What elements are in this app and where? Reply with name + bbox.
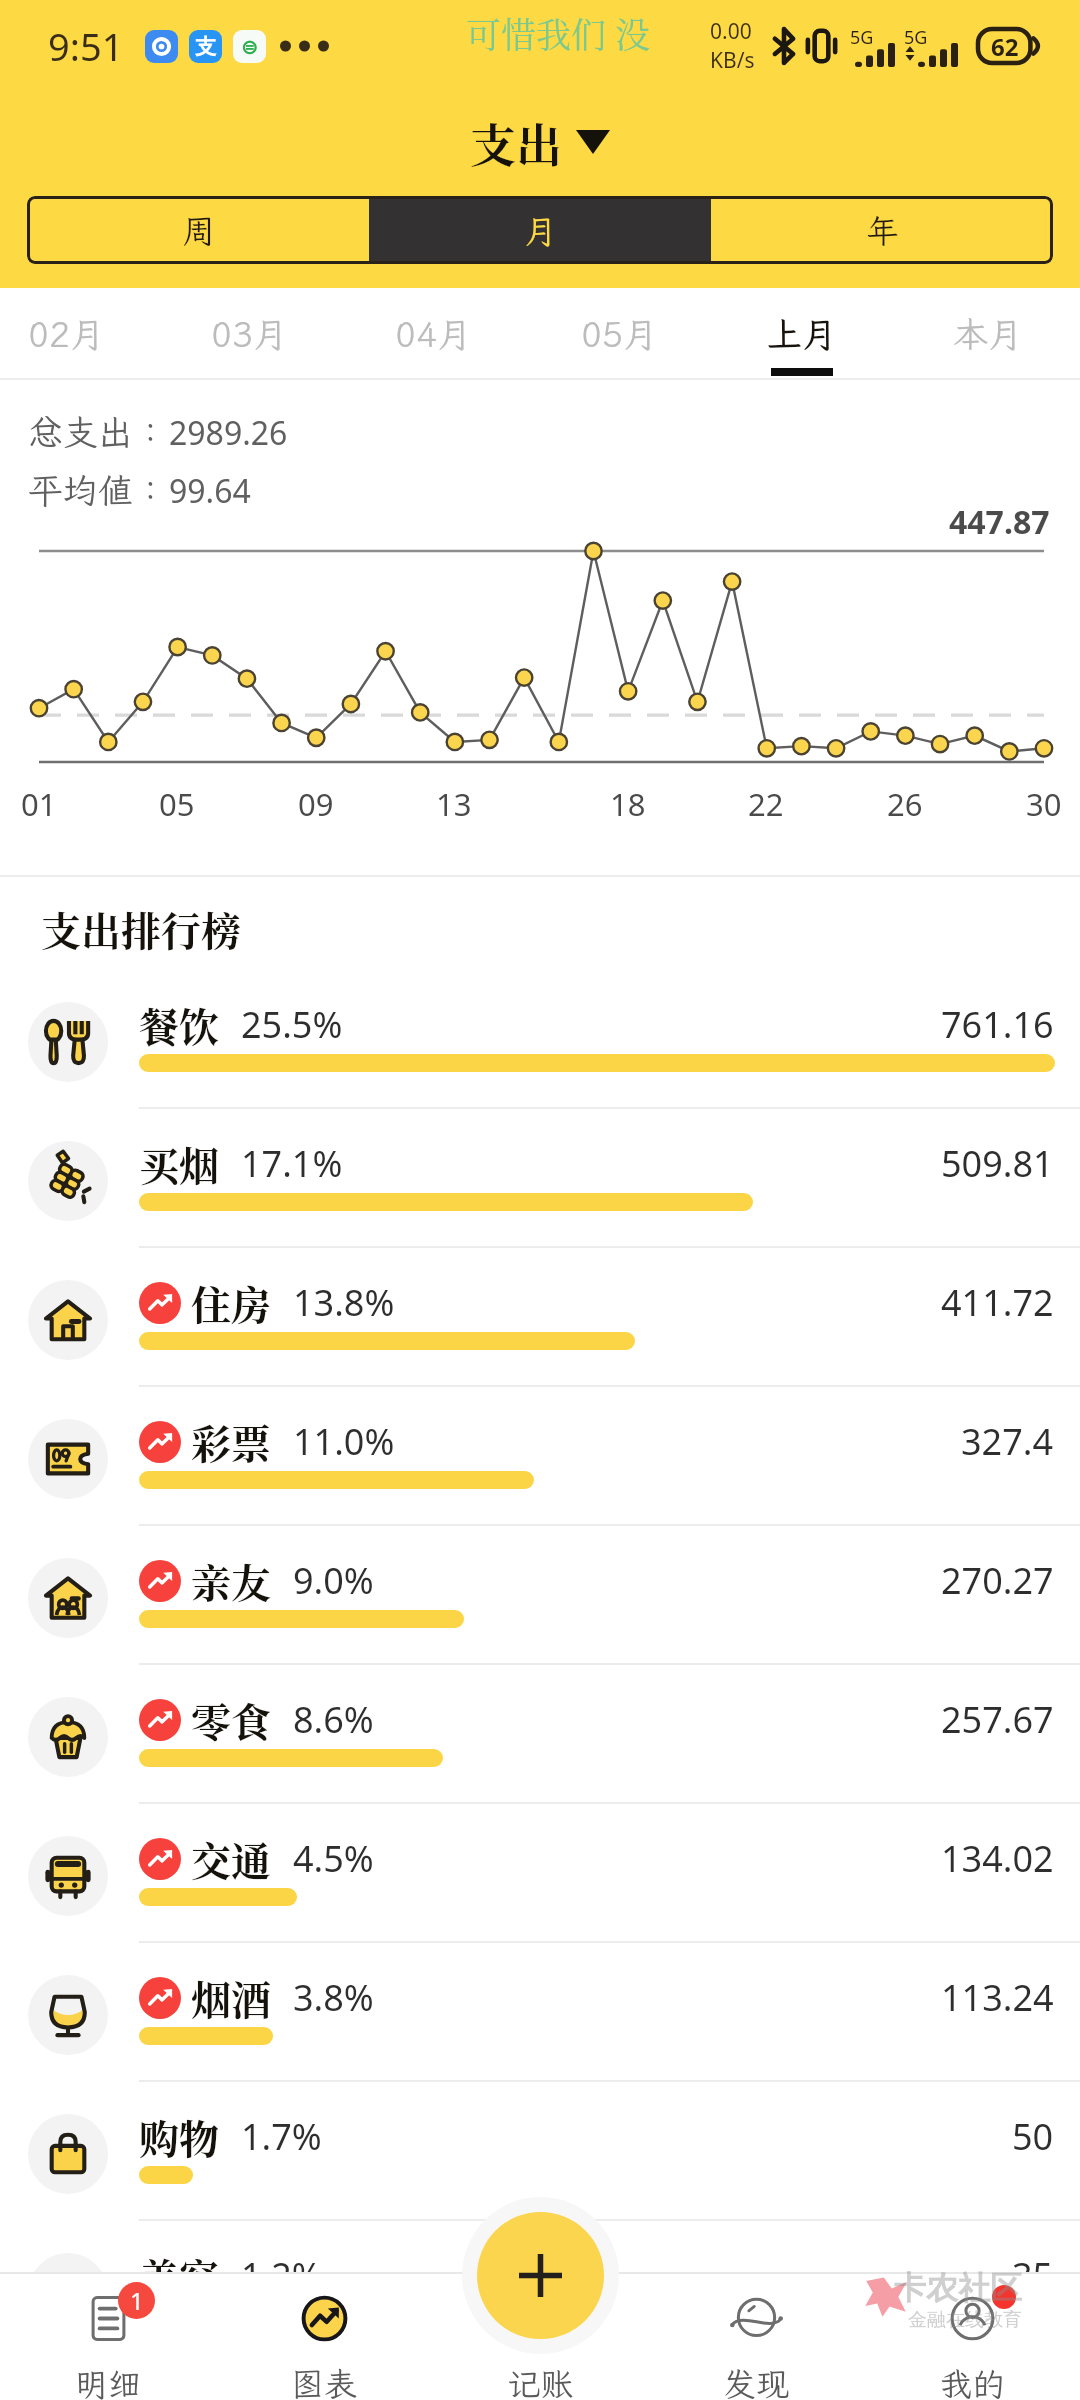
staticText: 2989.26 [169,411,288,455]
staticText: 0.00 [710,17,752,46]
button[interactable]: 本月 [903,288,1073,380]
staticText: 餐饮 [139,996,219,1053]
staticText: 卡农社区 [894,2268,1022,2308]
staticText: 3.8% [293,1973,374,2022]
staticText: 761.16 [941,1000,1054,1049]
staticText: 447.87 [949,500,1050,544]
button[interactable]: 图表 [216,2273,432,2400]
button[interactable]: 交通 [0,1802,1080,1941]
staticText: 1.2% [241,2251,322,2300]
staticText: 5G [904,25,928,50]
staticText: 发现 [723,2362,789,2400]
button[interactable]: 购物 [0,2080,1080,2219]
staticText: 327.4 [961,1417,1054,1466]
staticText: 支 [195,34,216,60]
staticText: 13 [436,783,472,823]
staticText: 04月 [395,311,473,357]
staticText: 35 [1012,2251,1054,2300]
staticText: 记账 [507,2362,573,2400]
staticText: 411.72 [941,1278,1054,1327]
staticText: 亲友 [191,1552,271,1609]
staticText: 257.67 [941,1695,1054,1744]
staticText: 月 [524,209,557,252]
staticText: 图表 [291,2362,357,2400]
staticText: 本月 [953,311,1024,357]
staticText: 年 [866,209,899,252]
staticText: 平均值： [28,467,169,513]
button[interactable]: 支出 [460,105,620,179]
staticText: 总支出： [28,409,169,455]
staticText: 25.5% [241,1000,343,1049]
button[interactable]: 餐饮 [0,968,1080,1107]
button[interactable]: 1 [0,2273,216,2400]
staticText: 03月 [211,311,289,357]
staticText: ⊜ [241,35,259,59]
staticText: 周 [182,209,215,252]
staticText: 05 [159,783,195,823]
staticText: 50 [1012,2112,1054,2161]
staticText: 62 [991,30,1019,63]
staticText: 1 [130,2284,144,2317]
staticText: 17.1% [241,1139,343,1188]
staticText: 18 [610,783,646,823]
button[interactable]: 上月 [717,288,887,380]
staticText: 01 [21,783,57,823]
button[interactable]: 记账 添加 [477,2212,604,2339]
staticText: 美容 [139,2247,219,2304]
staticText: 零食 [191,1691,271,1748]
button[interactable]: 04月 [349,288,519,380]
staticText: 8.6% [293,1695,374,1744]
staticText: 05月 [581,311,659,357]
staticText: 交通 [191,1830,271,1887]
button[interactable]: 发现 [648,2273,864,2400]
staticText: 烟酒 [191,1969,271,2026]
button[interactable]: 零食 [0,1663,1080,1802]
staticText: 22 [748,783,784,823]
staticText: 509.81 [941,1139,1054,1188]
button[interactable]: 记账 [432,2273,648,2400]
button[interactable]: 周 [27,196,369,264]
staticText: 彩票 [191,1413,271,1470]
staticText: 可惜我们 没 [466,8,650,58]
staticText: 我的 [939,2362,1005,2400]
staticText: 支出 [470,109,562,175]
staticText: 购物 [139,2108,219,2165]
staticText: 9.0% [293,1556,374,1605]
button[interactable]: 月 [369,196,711,264]
staticText: 09 [298,783,334,823]
button[interactable]: 亲友 [0,1524,1080,1663]
staticText: 支出排行榜 [41,900,241,957]
staticText: 30 [1026,783,1062,823]
staticText: KB/s [710,46,755,75]
staticText: 5G [850,25,874,50]
button[interactable]: 买烟 [0,1107,1080,1246]
staticText: 上月 [767,311,838,357]
staticText: 13.8% [293,1278,395,1327]
staticText: 4.5% [293,1834,374,1883]
staticText: 11.0% [293,1417,395,1466]
staticText: 住房 [191,1274,271,1331]
button[interactable]: 美容 [0,2219,1080,2358]
button[interactable]: 彩票 [0,1385,1080,1524]
staticText: 270.27 [941,1556,1054,1605]
staticText: 113.24 [941,1973,1054,2022]
button[interactable]: 烟酒 [0,1941,1080,2080]
button[interactable]: 住房 [0,1246,1080,1385]
staticText: 金融在线教育 [908,2308,1022,2332]
button[interactable]: 03月 [165,288,335,380]
staticText: 9:51 [48,20,124,72]
staticText: 02月 [28,311,106,357]
staticText: 明细 [75,2362,141,2400]
staticText: 买烟 [139,1135,219,1192]
button[interactable]: 我的 [864,2273,1080,2400]
button[interactable]: 02月 [0,288,152,380]
button[interactable]: 年 [711,196,1053,264]
staticText: 1.7% [241,2112,322,2161]
staticText: 99.64 [169,469,251,513]
button[interactable]: 05月 [535,288,705,380]
staticText: 26 [887,783,923,823]
staticText: 134.02 [941,1834,1054,1883]
